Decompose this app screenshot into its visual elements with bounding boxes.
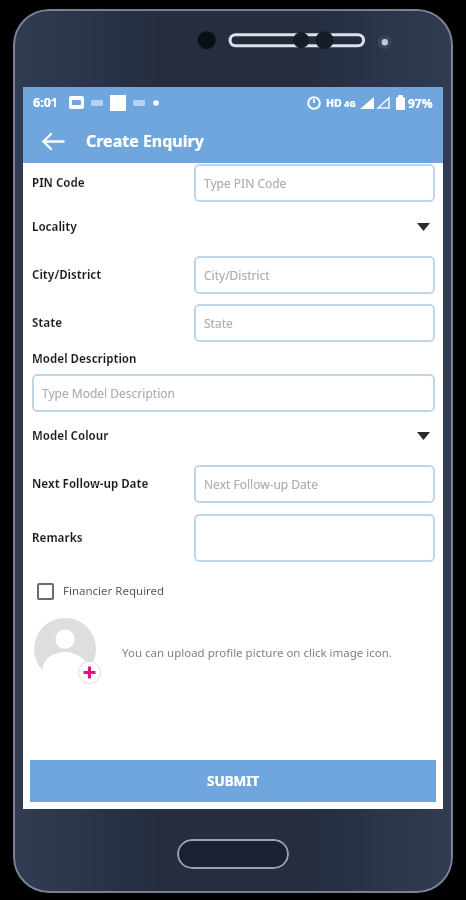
staticText: Model Colour: [32, 428, 109, 444]
staticText: City/District: [32, 267, 102, 283]
button[interactable]: Model Colour: [32, 412, 430, 460]
button[interactable]: Next Follow-up Date: [194, 465, 435, 503]
button[interactable]: SUBMIT: [30, 760, 436, 802]
button[interactable]: Financier Required: [37, 576, 165, 606]
staticText: SUBMIT: [207, 772, 260, 790]
staticText: 97%: [408, 95, 433, 111]
staticText: Type PIN Code: [204, 175, 287, 191]
staticText: Type Model Description: [42, 385, 175, 401]
staticText: You can upload profile picture on click …: [122, 645, 392, 661]
staticText: 6:01: [33, 94, 58, 111]
button[interactable]: Upload profile picture: [34, 618, 108, 688]
staticText: City/District: [204, 267, 270, 283]
staticText: Financier Required: [63, 583, 165, 599]
button[interactable]: Type PIN Code: [194, 164, 435, 202]
staticText: HD: [326, 96, 342, 110]
button[interactable]: Type Model Description: [32, 374, 435, 412]
staticText: Next Follow-up Date: [32, 476, 149, 492]
staticText: 4G: [344, 97, 356, 109]
staticText: Next Follow-up Date: [204, 476, 318, 492]
staticText: Create Enquiry: [86, 130, 204, 152]
button[interactable]: Locality: [32, 203, 430, 251]
staticText: Locality: [32, 219, 77, 235]
button[interactable]: City/District: [194, 256, 435, 294]
button[interactable]: State: [194, 304, 435, 342]
staticText: PIN Code: [32, 175, 85, 191]
button[interactable]: Back: [33, 121, 73, 161]
staticText: Remarks: [32, 530, 83, 546]
button[interactable]: [194, 514, 435, 562]
staticText: Model Description: [32, 351, 137, 367]
staticText: State: [204, 315, 233, 331]
staticText: State: [32, 315, 63, 331]
